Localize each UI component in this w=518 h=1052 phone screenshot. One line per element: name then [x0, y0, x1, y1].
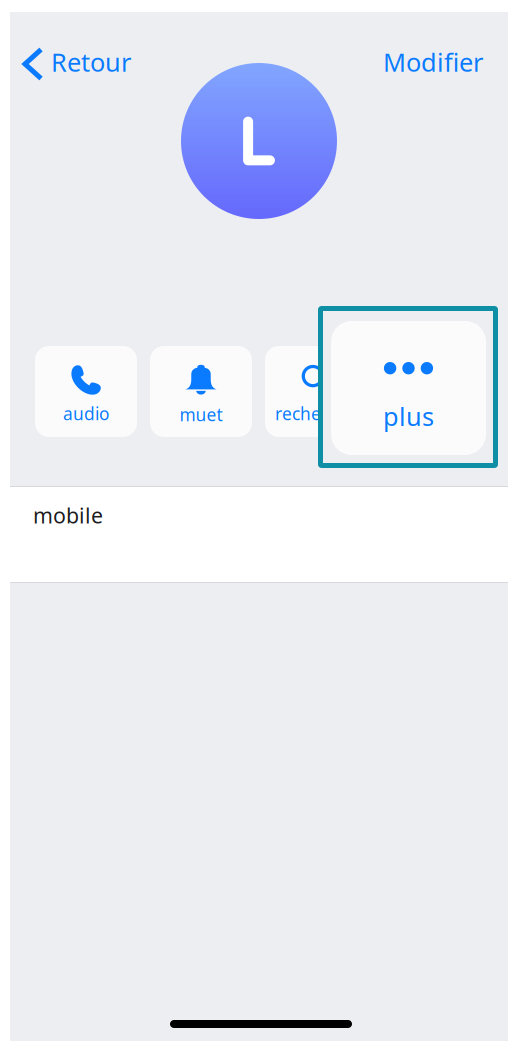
staticText: plus [383, 399, 434, 433]
button[interactable]: muet [150, 346, 252, 437]
staticText: recherche [275, 402, 357, 425]
button[interactable]: Modifier [348, 38, 508, 86]
staticText: Modifier [383, 45, 483, 79]
button[interactable]: plus [331, 321, 486, 455]
button[interactable]: plus [380, 346, 482, 437]
staticText: mobile [33, 501, 103, 529]
button[interactable]: audio [35, 346, 137, 437]
staticText: audio [63, 402, 109, 425]
staticText: Retour [51, 45, 131, 79]
staticText: plus [414, 398, 448, 421]
button[interactable]: mobile [10, 486, 508, 583]
button[interactable]: recherche [265, 346, 367, 437]
button[interactable]: Retour [0, 38, 160, 86]
staticText: muet [179, 403, 222, 426]
